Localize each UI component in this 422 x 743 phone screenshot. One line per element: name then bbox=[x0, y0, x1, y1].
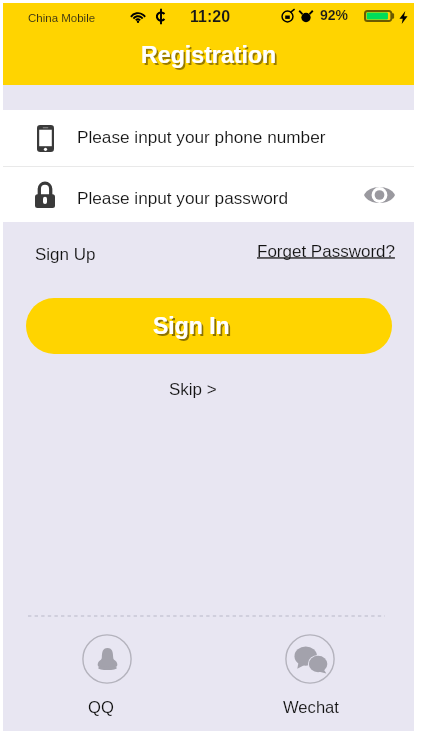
staticText: QQ bbox=[88, 698, 114, 717]
staticText: Wechat bbox=[283, 698, 339, 717]
button[interactable]: Sign In bbox=[26, 298, 392, 354]
button[interactable]: Skip > bbox=[163, 374, 223, 405]
staticText: Sign Up bbox=[35, 245, 96, 264]
button[interactable]: Show password bbox=[355, 171, 403, 219]
button[interactable]: Please input your phone number bbox=[3, 110, 414, 166]
staticText: Please input your password bbox=[77, 188, 289, 207]
staticText: Forget Password? bbox=[257, 242, 395, 261]
staticText: China Mobile bbox=[28, 12, 96, 25]
staticText: Registration bbox=[143, 44, 279, 70]
button[interactable] bbox=[266, 630, 356, 720]
staticText: Sign In bbox=[155, 315, 232, 341]
staticText: Please input your phone number bbox=[77, 127, 326, 146]
staticText: 11:20 bbox=[190, 8, 231, 26]
button[interactable]: Forget Password? bbox=[251, 236, 401, 267]
staticText: Sign In bbox=[153, 313, 230, 339]
button[interactable] bbox=[56, 630, 146, 720]
staticText: Skip > bbox=[169, 380, 217, 399]
staticText: 92% bbox=[320, 7, 349, 23]
button[interactable]: Please input your password bbox=[3, 167, 414, 222]
button[interactable]: Sign Up bbox=[29, 239, 102, 270]
staticText: Registration bbox=[141, 42, 277, 68]
